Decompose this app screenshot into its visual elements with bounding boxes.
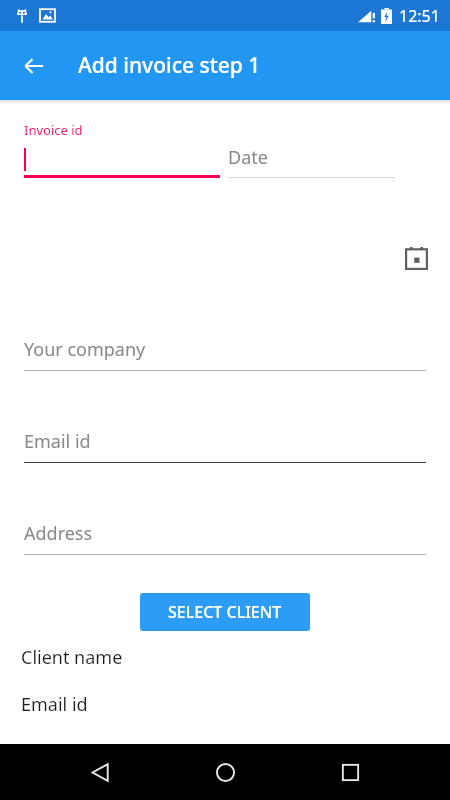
staticText: Date: [228, 145, 268, 170]
staticText: 12:51: [399, 5, 440, 27]
staticText: Invoice id: [24, 121, 83, 139]
button[interactable]: Back: [76, 748, 124, 796]
button[interactable]: Back: [10, 42, 58, 90]
button[interactable]: [24, 140, 220, 178]
button[interactable]: Email id: [24, 425, 426, 463]
staticText: Address: [24, 521, 93, 546]
staticText: Email id: [24, 429, 91, 454]
button[interactable]: Address: [24, 517, 426, 555]
staticText: Address: [21, 739, 90, 764]
staticText: Email id: [21, 692, 88, 717]
staticText: SELECT CLIENT: [168, 601, 282, 623]
staticText: Your company: [24, 337, 146, 362]
button[interactable]: Home: [201, 748, 249, 796]
staticText: Add invoice step 1: [78, 51, 261, 80]
staticText: Client name: [21, 645, 123, 670]
button[interactable]: Your company: [24, 333, 426, 371]
button[interactable]: SELECT CLIENT: [140, 593, 310, 631]
button[interactable]: Date: [228, 140, 395, 178]
button[interactable]: Pick date: [396, 238, 436, 278]
button[interactable]: Recent apps: [326, 748, 374, 796]
